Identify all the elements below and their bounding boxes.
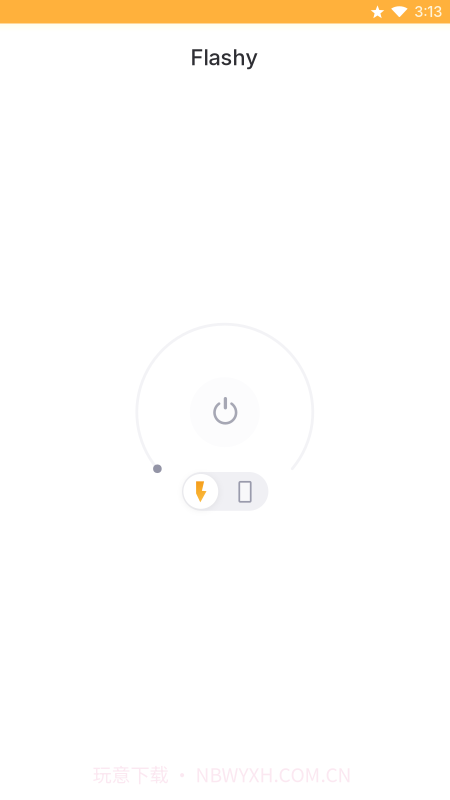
staticText: 3:13 — [414, 3, 442, 21]
button[interactable]: Screen light — [223, 472, 267, 511]
staticText: Flashy — [190, 44, 257, 70]
staticText: 玩意下载 · NBWYXH.COM.CN — [92, 760, 351, 788]
button[interactable]: Power — [190, 377, 260, 447]
button[interactable]: Brightness — [140, 452, 174, 486]
button[interactable]: Flashlight — [179, 472, 222, 511]
